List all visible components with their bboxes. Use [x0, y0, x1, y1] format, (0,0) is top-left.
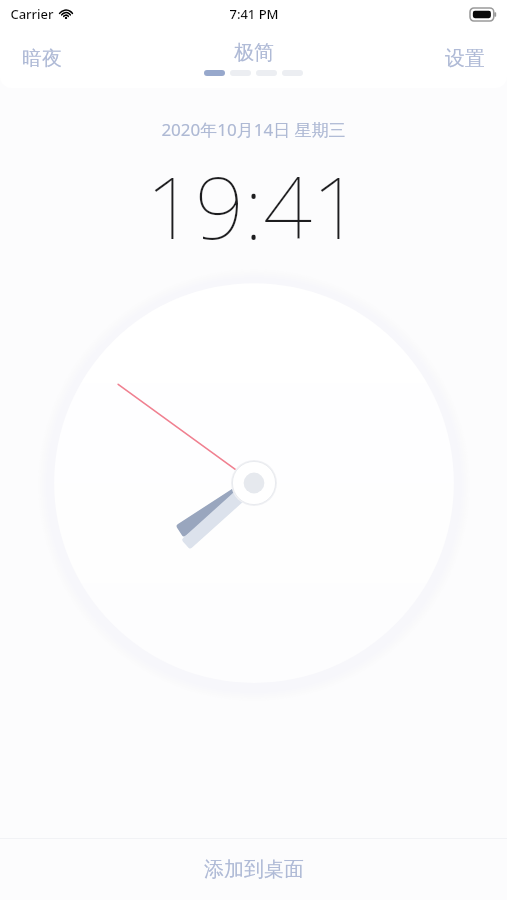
staticText: 设置	[445, 46, 485, 71]
button[interactable]: 暗夜	[8, 38, 76, 79]
staticText: 添加到桌面	[204, 857, 304, 882]
button[interactable]: 添加到桌面	[0, 838, 507, 900]
staticText: 极简	[234, 40, 274, 65]
staticText: 暗夜	[22, 46, 62, 71]
button[interactable]: 极简	[204, 40, 303, 76]
button[interactable]: 设置	[431, 38, 499, 79]
staticText: 2020年10月14日 星期三	[161, 118, 346, 141]
button[interactable]: Analog clock face	[49, 278, 459, 688]
staticText: 7:41 PM	[229, 5, 279, 23]
staticText: 19:41	[146, 147, 361, 264]
staticText: Carrier	[10, 5, 54, 23]
